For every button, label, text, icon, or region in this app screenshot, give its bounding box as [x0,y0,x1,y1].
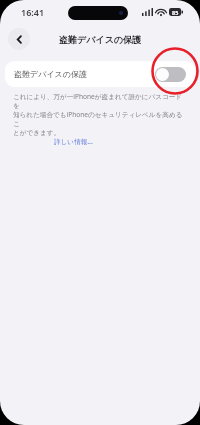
staticText: 16:41 [21,6,45,18]
staticText: 盗難デバイスの保護 [59,34,142,45]
staticText: 盗難デバイスの保護 [14,69,87,79]
button[interactable]: 盗難デバイスの保護 [5,61,195,87]
button[interactable]: 盗難デバイスの保護のオン/オフ [155,67,186,82]
staticText: 85 [172,9,179,16]
staticText: これにより、万が一iPhoneが盗まれて誰かにパスコードを 知られた場合でもiP… [13,92,187,137]
button[interactable]: 詳しい情報... [54,137,93,146]
button[interactable]: 戻る [8,28,30,50]
